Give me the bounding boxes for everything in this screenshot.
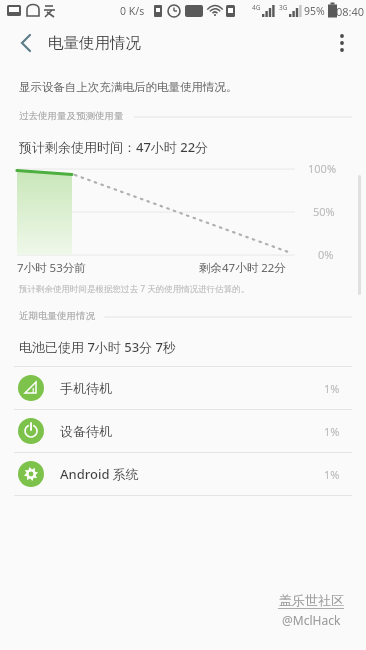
staticText: 预计剩余使用时间是根据您过去 7 天的使用情况进行估算的。 (19, 283, 250, 295)
staticText: 08:40 (336, 4, 365, 19)
staticText: 1% (324, 381, 340, 396)
staticText: 过去使用量及预测使用量 (19, 110, 124, 122)
staticText: 3G (279, 3, 288, 12)
staticText: 剩余47小时 22分 (199, 260, 286, 276)
staticText: 近期电量使用情况 (19, 310, 95, 322)
staticText: 7小时 53分前 (17, 260, 86, 276)
staticText: 电量使用情况 (48, 33, 141, 53)
staticText: 手机待机 (60, 380, 112, 396)
button[interactable]: Back (8, 25, 44, 61)
staticText: 4G (252, 3, 261, 12)
staticText: 1% (324, 467, 340, 482)
staticText: 设备待机 (60, 423, 112, 439)
button[interactable]: 设备待机 (0, 410, 366, 452)
staticText: 95% (304, 4, 325, 18)
button[interactable]: 手机待机 (0, 367, 366, 409)
staticText: 100% (308, 161, 337, 176)
staticText: @MclHack (282, 612, 341, 628)
staticText: 显示设备自上次充满电后的电量使用情况。 (19, 80, 238, 94)
staticText: 1% (324, 424, 340, 439)
staticText: 电池已使用 7小时 53分 7秒 (19, 338, 176, 356)
button[interactable]: More options (324, 25, 360, 61)
staticText: 盖乐世社区 (279, 592, 344, 608)
staticText: 50% (313, 204, 335, 219)
staticText: 0 K/s (120, 4, 145, 18)
staticText: Android 系统 (60, 465, 139, 483)
staticText: 预计剩余使用时间：47小时 22分 (19, 138, 209, 156)
staticText: 0% (318, 247, 334, 262)
button[interactable]: Android 系统 (0, 453, 366, 495)
